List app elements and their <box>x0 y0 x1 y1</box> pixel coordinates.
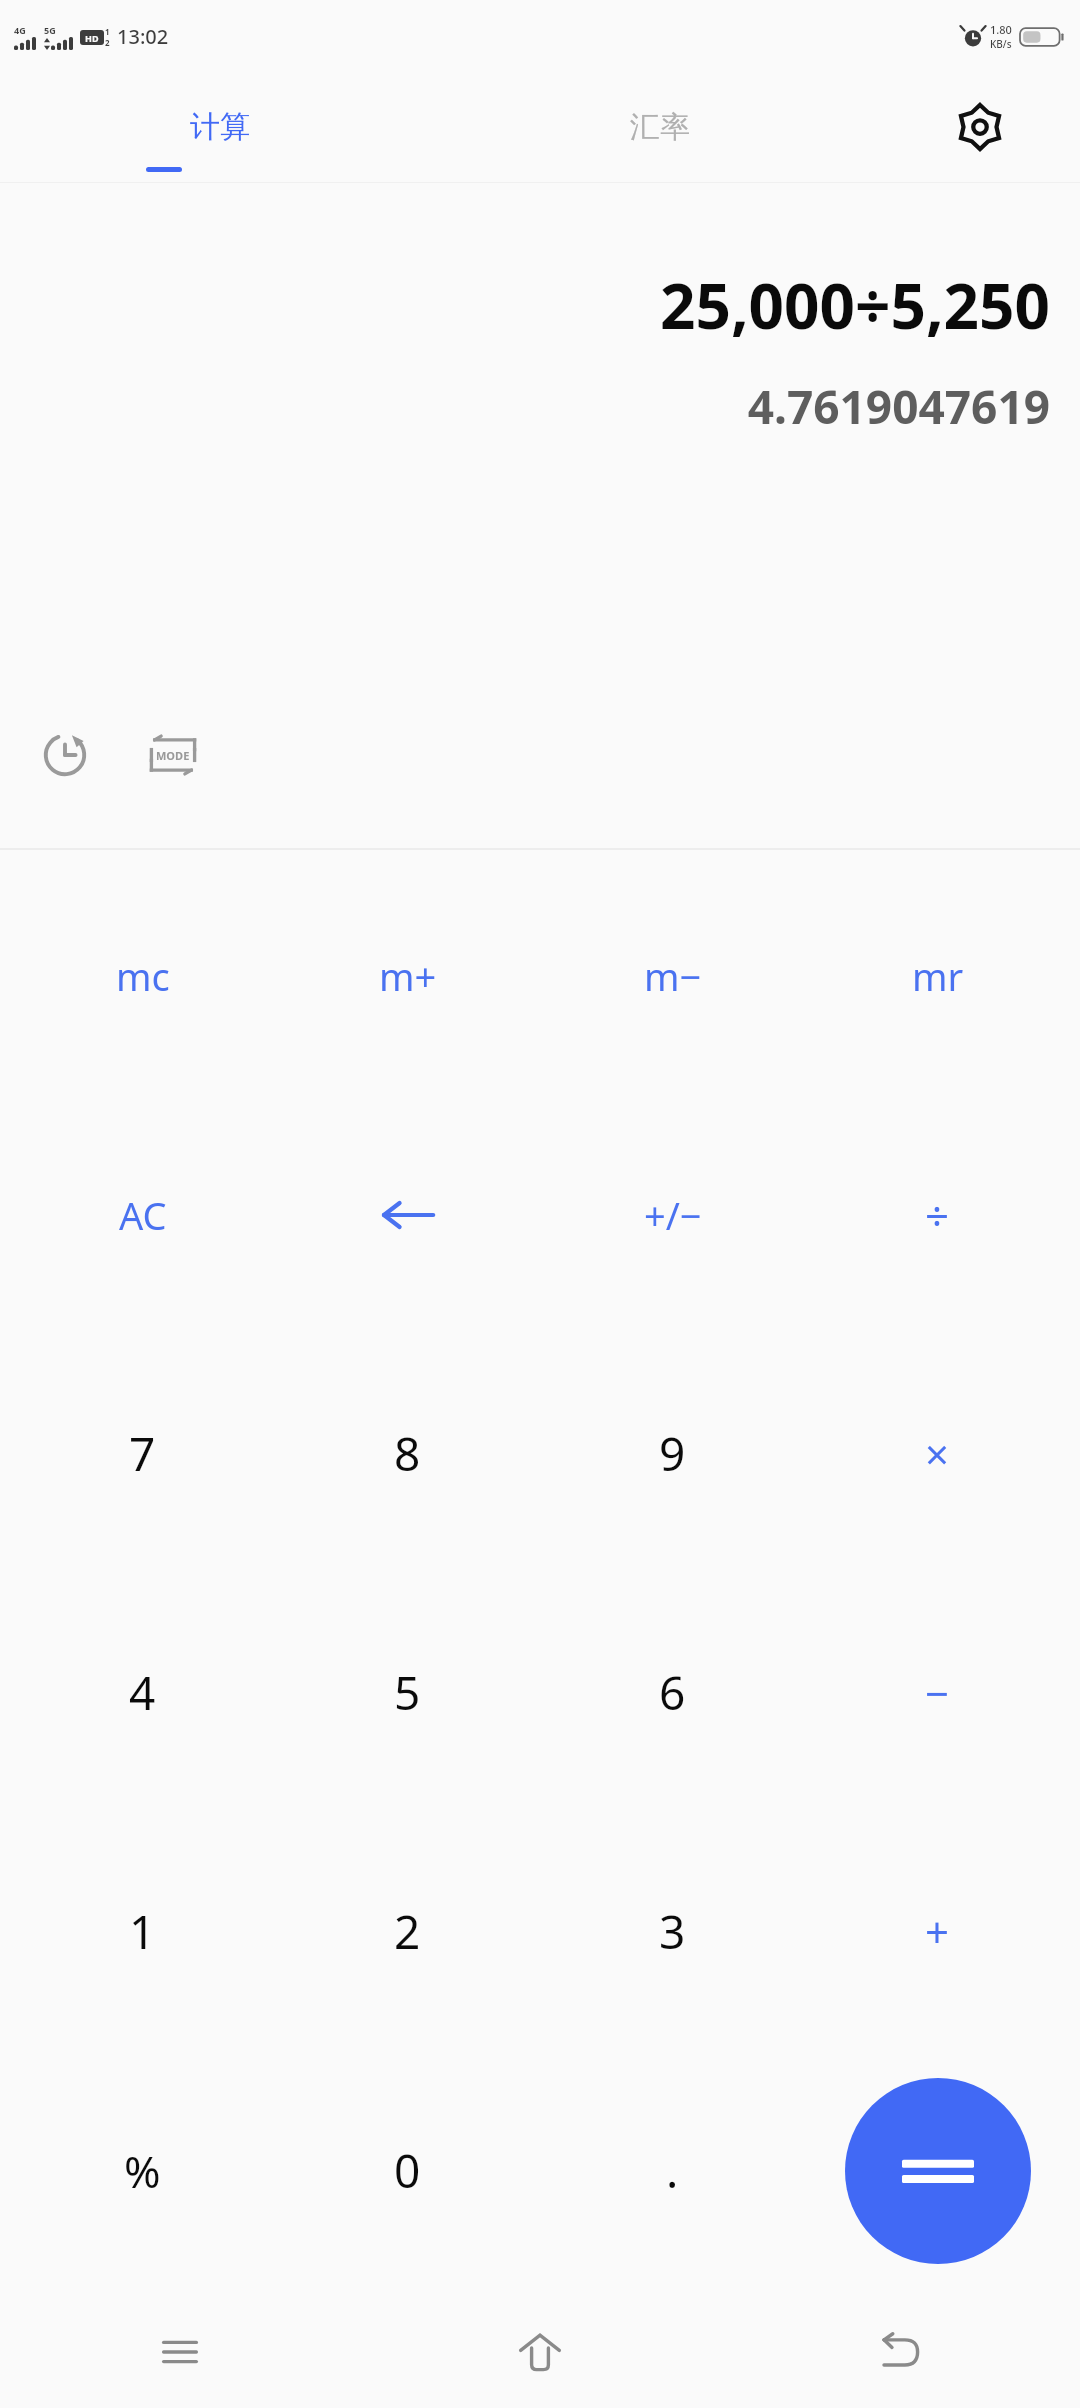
button[interactable]: ÷ <box>805 1095 1070 1334</box>
button[interactable]: mc <box>10 856 275 1095</box>
staticText: mr <box>912 950 964 1002</box>
staticText: m− <box>644 950 702 1002</box>
staticText: 4 <box>129 1661 156 1724</box>
staticText: 1 <box>105 26 110 37</box>
staticText: 3 <box>659 1900 686 1963</box>
staticText: 计算 <box>190 108 250 146</box>
staticText: 7 <box>129 1422 156 1485</box>
button[interactable]: +/− <box>540 1095 805 1334</box>
staticText: 13:02 <box>117 23 169 50</box>
button[interactable]: Settings <box>880 72 1080 182</box>
button[interactable]: % <box>10 2051 275 2290</box>
staticText: 25,000÷5,250 <box>30 263 1050 347</box>
staticText: 6 <box>659 1661 686 1724</box>
button[interactable]: × <box>805 1334 1070 1573</box>
button[interactable]: mr <box>805 856 1070 1095</box>
button[interactable]: Recent apps <box>0 2296 360 2408</box>
staticText: 4G <box>14 24 26 36</box>
staticText: 9 <box>659 1422 686 1485</box>
button[interactable]: Equals <box>845 2078 1031 2264</box>
staticText: AC <box>119 1189 167 1241</box>
button[interactable]: m+ <box>275 856 540 1095</box>
button[interactable]: 8 <box>275 1334 540 1573</box>
button[interactable]: AC <box>10 1095 275 1334</box>
button[interactable]: 6 <box>540 1573 805 1812</box>
button[interactable]: 3 <box>540 1812 805 2051</box>
staticText: % <box>124 2141 161 2201</box>
button[interactable]: 4 <box>10 1573 275 1812</box>
button[interactable]: Backspace <box>275 1095 540 1334</box>
staticText: 0 <box>394 2139 421 2202</box>
staticText: m+ <box>379 950 437 1002</box>
staticText: 8 <box>394 1422 421 1485</box>
staticText: 5G <box>44 24 56 36</box>
staticText: − <box>925 1664 950 1721</box>
button[interactable]: + <box>805 1812 1070 2051</box>
button[interactable]: . <box>540 2051 805 2290</box>
staticText: KB/s <box>990 37 1012 51</box>
button[interactable]: 5 <box>275 1573 540 1812</box>
staticText: 1.80 <box>990 22 1012 37</box>
staticText: + <box>925 1903 950 1960</box>
button[interactable]: − <box>805 1573 1070 1812</box>
button[interactable]: 2 <box>275 1812 540 2051</box>
staticText: . <box>666 2139 679 2202</box>
button[interactable]: History <box>30 720 100 790</box>
staticText: 2 <box>394 1900 421 1963</box>
staticText: 汇率 <box>630 108 690 146</box>
button[interactable]: 计算 <box>0 72 440 182</box>
button[interactable]: Home <box>360 2296 720 2408</box>
staticText: mc <box>116 950 170 1002</box>
staticText: HD <box>85 32 99 44</box>
button[interactable]: 9 <box>540 1334 805 1573</box>
button[interactable]: Equals <box>805 2051 1070 2290</box>
button[interactable]: Mode <box>138 720 208 790</box>
staticText: 1 <box>129 1900 156 1963</box>
button[interactable]: 汇率 <box>440 72 880 182</box>
staticText: 5 <box>394 1661 421 1724</box>
staticText: MODE <box>156 748 190 763</box>
staticText: ÷ <box>925 1186 950 1243</box>
button[interactable]: 0 <box>275 2051 540 2290</box>
button[interactable]: Back <box>720 2296 1080 2408</box>
button[interactable]: 7 <box>10 1334 275 1573</box>
staticText: +/− <box>644 1189 702 1241</box>
staticText: 4.7619047619 <box>30 375 1050 438</box>
button[interactable]: m− <box>540 856 805 1095</box>
staticText: × <box>925 1425 950 1482</box>
button[interactable]: 1 <box>10 1812 275 2051</box>
staticText: 2 <box>105 37 110 48</box>
